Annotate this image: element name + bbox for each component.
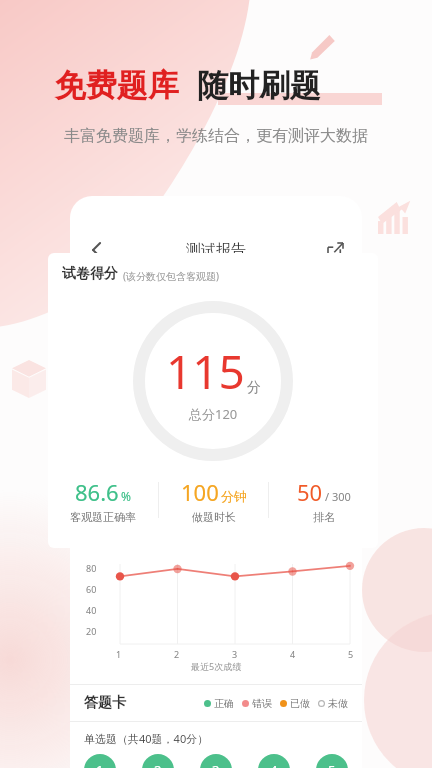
staticText: 80 [86, 562, 97, 574]
button[interactable]: 3 [200, 754, 232, 768]
button[interactable]: 50 [269, 477, 378, 524]
staticText: 1 [116, 648, 122, 660]
staticText: 随时刷题 [197, 66, 321, 105]
staticText: 试卷得分 [62, 265, 118, 283]
staticText: 总分120 [189, 405, 238, 423]
staticText: 2 [174, 648, 180, 660]
button[interactable]: 5 [316, 754, 348, 768]
button[interactable]: 100 [159, 477, 268, 524]
staticText: 答题卡 [84, 694, 126, 712]
staticText: 最近5次成绩 [191, 660, 242, 672]
staticText: 免费题库 [55, 66, 179, 105]
staticText: 100 [181, 477, 219, 507]
staticText: 5 [328, 761, 336, 768]
button[interactable]: 86.6 [48, 477, 158, 524]
staticText: / 300 [325, 489, 351, 504]
staticText: 115 [166, 340, 245, 403]
staticText: (该分数仅包含客观题) [123, 269, 219, 283]
staticText: 做题时长 [192, 510, 236, 524]
staticText: 4 [290, 648, 296, 660]
staticText: 86.6 [75, 477, 119, 507]
staticText: 4 [270, 761, 278, 768]
staticText: 3 [232, 648, 238, 660]
staticText: 40 [86, 604, 97, 616]
button[interactable]: Share [322, 237, 348, 263]
staticText: 3 [212, 761, 220, 768]
staticText: 丰富免费题库，学练结合，更有测评大数据 [64, 126, 368, 146]
staticText: 测试报告 [186, 241, 246, 260]
staticText: 正确 [214, 697, 234, 710]
staticText: 60 [86, 583, 97, 595]
staticText: 错误 [252, 697, 272, 710]
staticText: 20 [86, 625, 97, 637]
staticText: 分钟 [221, 488, 247, 504]
staticText: 单选题（共40题，40分） [84, 731, 209, 746]
staticText: % [121, 488, 131, 504]
staticText: 50 [297, 477, 323, 507]
staticText: 客观题正确率 [70, 510, 136, 524]
button[interactable]: 2 [142, 754, 174, 768]
staticText: 未做 [328, 697, 348, 710]
staticText: 分 [247, 379, 261, 397]
staticText: 5 [348, 648, 354, 660]
staticText: 2 [154, 761, 162, 768]
button[interactable]: 1 [84, 754, 116, 768]
button[interactable]: 4 [258, 754, 290, 768]
staticText: 1 [96, 761, 104, 768]
staticText: 排名 [313, 510, 335, 524]
button[interactable]: Back [84, 237, 110, 263]
staticText: 已做 [290, 697, 310, 710]
